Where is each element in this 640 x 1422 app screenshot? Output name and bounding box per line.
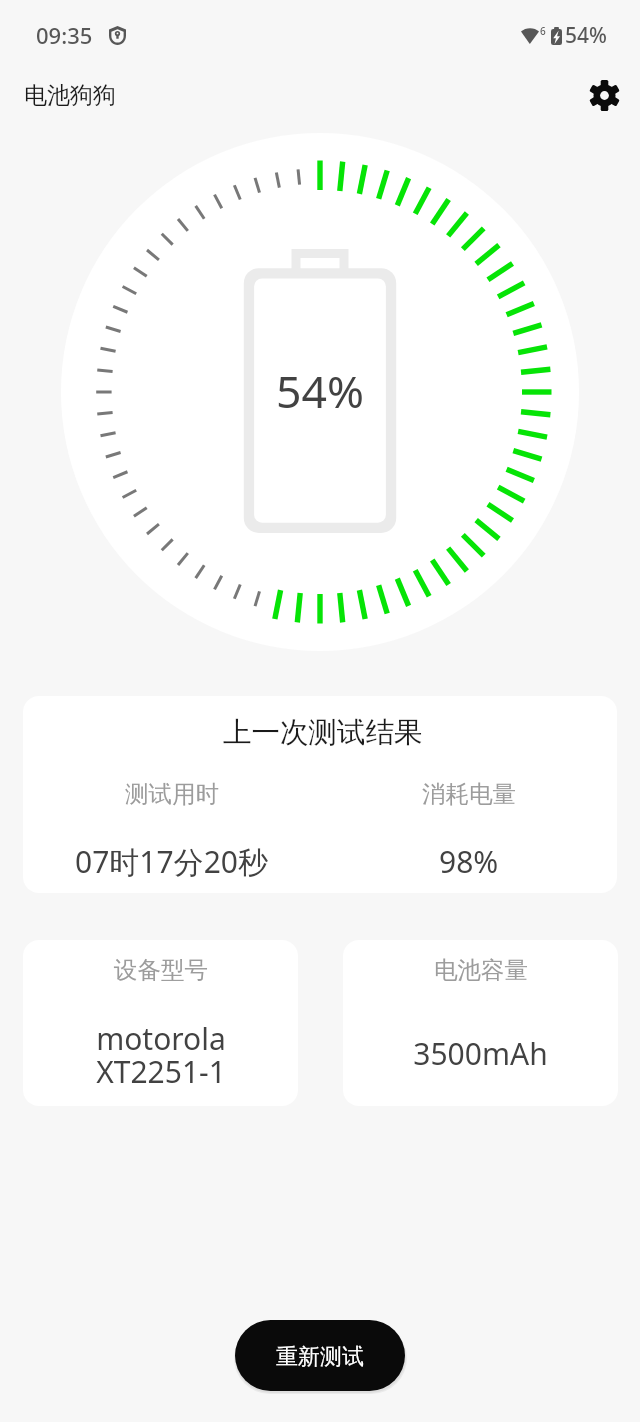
staticText: 重新测试 (276, 1343, 364, 1371)
staticText: 09:35 (36, 20, 93, 50)
staticText: 07时17分20秒 (75, 841, 268, 882)
staticText: 54% (565, 21, 607, 50)
button[interactable]: 重新测试 (235, 1320, 405, 1391)
staticText: 电池狗狗 (24, 81, 116, 110)
staticText: 54% (276, 360, 364, 421)
button[interactable]: Settings (580, 71, 628, 119)
staticText: 消耗电量 (422, 779, 516, 809)
button[interactable]: 上一次测试结果 (23, 696, 617, 893)
staticText: 3500mAh (413, 1033, 548, 1074)
button[interactable]: 设备型号 (23, 940, 298, 1106)
staticText: 上一次测试结果 (223, 715, 423, 751)
staticText: 测试用时 (125, 779, 219, 809)
staticText: 设备型号 (114, 955, 208, 985)
button[interactable]: 电池容量 (343, 940, 618, 1106)
staticText: motorola XT2251-1 (96, 1018, 226, 1092)
staticText: 6 (540, 24, 546, 38)
staticText: 电池容量 (434, 955, 528, 985)
staticText: 98% (439, 841, 499, 882)
